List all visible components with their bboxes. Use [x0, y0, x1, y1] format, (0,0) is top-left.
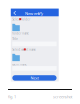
- staticText: New entry: [25, 11, 43, 16]
- staticText: Select folder: [12, 18, 30, 21]
- staticText: screenshot: [53, 94, 72, 99]
- staticText: folder name: [12, 32, 29, 35]
- button[interactable]: Next: [12, 75, 57, 81]
- staticText: event name: [12, 63, 27, 66]
- staticText: Select event name: [12, 48, 36, 51]
- staticText: Next: [30, 75, 38, 81]
- staticText: fig. 1: [8, 94, 16, 99]
- staticText: Title: [12, 37, 18, 41]
- button[interactable]: Back: [12, 9, 18, 17]
- button[interactable]: More options: [37, 11, 43, 15]
